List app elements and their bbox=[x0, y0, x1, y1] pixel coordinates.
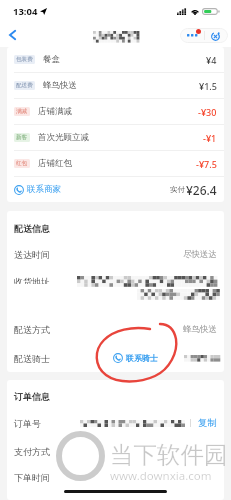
button[interactable]: 配送费 bbox=[7, 73, 224, 98]
staticText: 店铺满减 bbox=[38, 106, 72, 117]
button[interactable]: 联系骑士 bbox=[113, 353, 158, 363]
staticText: 新客 bbox=[16, 134, 28, 141]
staticText: ¥1.5 bbox=[199, 80, 217, 92]
staticText: 联系骑士 bbox=[126, 353, 158, 363]
staticText: -¥30 bbox=[198, 106, 217, 118]
staticText: 配送骑士 bbox=[14, 353, 50, 364]
staticText: 店铺红包 bbox=[38, 158, 72, 169]
button[interactable]: 配送方式 bbox=[7, 320, 224, 338]
staticText: 尽快送达 bbox=[183, 249, 217, 260]
staticText: 订单信息 bbox=[14, 391, 50, 402]
staticText: 联系商家 bbox=[27, 184, 61, 195]
staticText: 配送信息 bbox=[14, 223, 50, 234]
button[interactable]: 包装费 bbox=[7, 47, 224, 72]
button[interactable]: 满减 bbox=[7, 99, 224, 124]
staticText: 满减 bbox=[16, 108, 28, 115]
staticText: -¥7.5 bbox=[196, 158, 217, 170]
button[interactable]: 红包 bbox=[7, 151, 224, 176]
staticText: 下单时间 bbox=[14, 472, 50, 483]
button[interactable]: Close mini program bbox=[204, 28, 228, 43]
button[interactable]: 联系商家 bbox=[14, 184, 61, 195]
staticText: 复制 bbox=[198, 417, 217, 429]
button[interactable]: 复制 bbox=[198, 417, 217, 429]
staticText: ¥26.4 bbox=[186, 182, 217, 198]
staticText: 13:04 bbox=[13, 5, 38, 18]
staticText: 蜂鸟快送 bbox=[43, 80, 77, 91]
staticText: 首次光顾立减 bbox=[38, 132, 89, 143]
button[interactable]: 下单时间 bbox=[7, 468, 224, 486]
staticText: 收货地址 bbox=[14, 276, 50, 284]
staticText: -¥1 bbox=[203, 132, 217, 144]
staticText: 配送方式 bbox=[14, 324, 50, 335]
staticText: 订单号 bbox=[14, 418, 41, 429]
button[interactable]: Back bbox=[0, 23, 26, 47]
staticText: 配送费 bbox=[16, 82, 33, 89]
staticText: 实付 bbox=[170, 185, 185, 194]
staticText: 红包 bbox=[16, 160, 28, 167]
staticText: 餐盒 bbox=[43, 54, 60, 65]
button[interactable]: 新客 bbox=[7, 125, 224, 150]
staticText: 蜂鸟快送 bbox=[183, 324, 217, 335]
button[interactable]: 收货地址 bbox=[7, 276, 224, 298]
staticText: www.downxia.com bbox=[110, 468, 212, 484]
button[interactable]: 送达时间 bbox=[7, 245, 224, 263]
staticText: 包装费 bbox=[16, 56, 33, 63]
staticText: ¥4 bbox=[206, 54, 217, 66]
button[interactable]: More options bbox=[180, 28, 204, 43]
staticText: 当下软件园 bbox=[110, 440, 228, 470]
staticText: 支付方式 bbox=[14, 446, 50, 457]
button[interactable]: 支付方式 bbox=[7, 442, 224, 460]
staticText: 送达时间 bbox=[14, 249, 50, 260]
